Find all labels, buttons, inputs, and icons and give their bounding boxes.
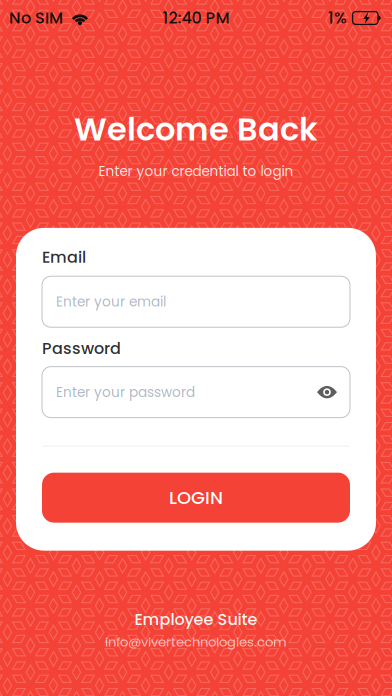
staticText: Enter your password [56, 383, 195, 402]
staticText: No SIM [9, 7, 63, 29]
staticText: Employee Suite [134, 608, 257, 630]
staticText: info@vivertechnologies.com [105, 632, 287, 651]
staticText: 1% [328, 7, 347, 29]
staticText: Welcome Back [74, 107, 318, 152]
staticText: Password [42, 337, 121, 360]
staticText: Email [42, 246, 86, 268]
staticText: Enter your email [56, 292, 166, 311]
staticText: Enter your credential to login [98, 162, 293, 181]
button[interactable]: Show password [314, 380, 340, 404]
staticText: LOGIN [169, 485, 223, 510]
staticText: 12:40 PM [162, 7, 229, 29]
button[interactable]: LOGIN [42, 473, 350, 523]
